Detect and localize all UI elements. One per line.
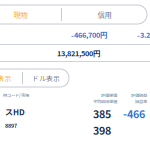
staticText: -466 <box>123 106 145 121</box>
staticText: 評価単価 <box>101 92 117 98</box>
staticText: スHD <box>5 106 25 118</box>
staticText: 評価損益 <box>131 92 147 98</box>
staticText: 円表示 <box>0 73 11 83</box>
staticText: -3.2 <box>137 29 150 40</box>
staticText: 平均取得単価 <box>93 98 117 104</box>
staticText: -466,700円 <box>71 29 107 40</box>
button[interactable]: 信用 <box>62 5 147 24</box>
staticText: 現物 <box>13 9 27 20</box>
staticText: 損益率 <box>135 98 147 104</box>
staticText: ドル表示 <box>32 73 60 83</box>
staticText: 柄コード/市場 <box>3 92 29 98</box>
staticText: 8897 <box>5 122 17 129</box>
button[interactable]: スHD <box>0 106 150 150</box>
staticText: 信用 <box>97 9 111 20</box>
staticText: 385 <box>93 106 111 121</box>
button[interactable]: 現物 <box>0 5 61 24</box>
button[interactable]: 円表示 <box>0 69 22 87</box>
staticText: 398 <box>93 122 111 138</box>
staticText: 13,821,500円 <box>57 48 100 58</box>
button[interactable]: ドル表示 <box>23 69 69 87</box>
